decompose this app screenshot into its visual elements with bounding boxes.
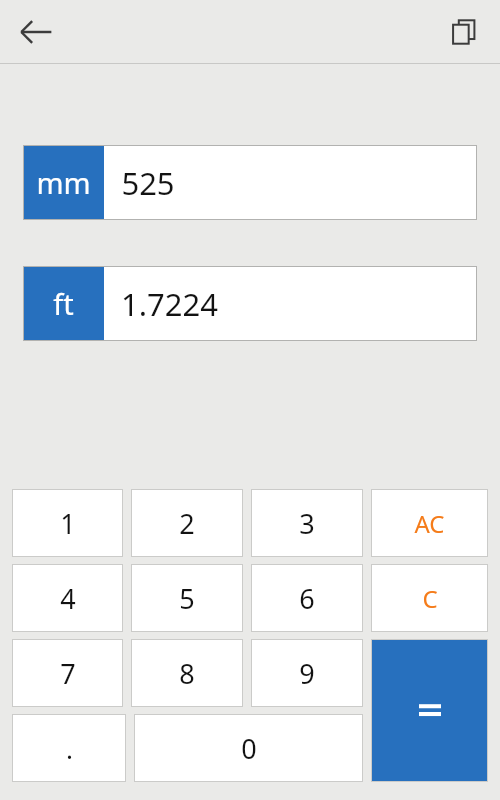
button[interactable]: 2 — [131, 489, 243, 557]
button[interactable]: 0 — [134, 714, 363, 782]
button[interactable]: Equals — [371, 639, 488, 782]
staticText: AC — [414, 507, 445, 540]
staticText: . — [66, 731, 73, 766]
staticText: 3 — [299, 505, 315, 542]
button[interactable]: AC — [371, 489, 488, 557]
staticText: ft — [53, 284, 74, 323]
button[interactable]: ft — [23, 266, 477, 341]
staticText: 1.7224 — [121, 283, 218, 325]
staticText: mm — [36, 163, 91, 202]
staticText: 7 — [60, 655, 76, 692]
staticText: 2 — [179, 505, 195, 542]
staticText: 0 — [241, 730, 257, 767]
staticText: 8 — [179, 655, 195, 692]
staticText: 5 — [179, 580, 195, 617]
staticText: C — [422, 582, 438, 615]
button[interactable]: . — [12, 714, 126, 782]
button[interactable]: 5 — [131, 564, 243, 632]
button[interactable]: 1 — [12, 489, 123, 557]
button[interactable]: 4 — [12, 564, 123, 632]
button[interactable]: 8 — [131, 639, 243, 707]
button[interactable]: mm — [23, 145, 477, 220]
button[interactable]: C — [371, 564, 488, 632]
staticText: 9 — [299, 655, 315, 692]
staticText: 6 — [299, 580, 315, 617]
staticText: 4 — [60, 580, 76, 617]
staticText: 1 — [60, 505, 76, 542]
button[interactable]: 3 — [251, 489, 363, 557]
button[interactable]: 7 — [12, 639, 123, 707]
button[interactable]: Back — [8, 4, 64, 60]
button[interactable]: 6 — [251, 564, 363, 632]
button[interactable]: Copy — [438, 6, 490, 58]
staticText: 525 — [121, 162, 175, 204]
button[interactable]: 9 — [251, 639, 363, 707]
